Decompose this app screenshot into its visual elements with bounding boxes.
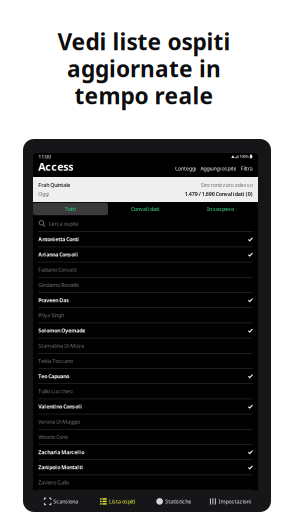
staticText: Tekla Toscano [38, 357, 73, 364]
button[interactable]: Stamatina Di Moze [33, 338, 258, 354]
staticText: Stamatina Di Moze [38, 342, 84, 349]
staticText: Tutti [64, 205, 76, 213]
staticText: Vittorio Conti [38, 433, 68, 440]
staticText: Convalidati [131, 205, 160, 213]
staticText: Aggiungi ospite [200, 165, 236, 172]
button[interactable]: Vittorio Conti [33, 430, 258, 445]
button[interactable]: Zacharia Marcello [33, 445, 258, 460]
staticText: Vedi liste ospiti [57, 26, 230, 56]
staticText: Teo Capuano [38, 373, 69, 380]
staticText: Oggi [38, 190, 49, 198]
staticText: Sincronizzato adesso [201, 181, 253, 188]
button[interactable]: Conteggi [175, 161, 196, 176]
button[interactable]: Zaviero Gallo [33, 475, 258, 490]
staticText: 11:00 [38, 153, 51, 160]
button[interactable]: Girolamo Rosiello [33, 278, 258, 293]
staticText: Scansiona [53, 498, 78, 505]
button[interactable]: Tutti [33, 203, 108, 215]
staticText: Cerca ospite [48, 220, 78, 227]
staticText: Tullio Lucchesi [38, 388, 73, 395]
button[interactable]: Teo Capuano [33, 369, 258, 384]
staticText: aggiornate in [67, 53, 221, 83]
staticText: Zanipolo Montalti [38, 464, 83, 471]
button[interactable]: Verona Di Maggio [33, 414, 258, 430]
button[interactable]: Zanipolo Montalti [33, 460, 258, 475]
staticText: In sospeso [207, 205, 234, 213]
button[interactable]: Praveen Das [33, 293, 258, 308]
button[interactable]: Solomon Oyemade [33, 323, 258, 338]
staticText: Statistiche [165, 498, 191, 505]
staticText: 100% [240, 154, 249, 159]
staticText: Impostazioni [218, 498, 250, 505]
staticText: Girolamo Rosiello [38, 281, 79, 288]
button[interactable]: Tullio Lucchesi [33, 384, 258, 399]
staticText: tempo reale [74, 80, 213, 110]
staticText: Praveen Das [38, 297, 69, 304]
staticText: Priya Singh [38, 312, 64, 319]
staticText: Fabiano Corsetti [38, 266, 77, 273]
button[interactable]: Scansiona [33, 490, 89, 512]
staticText: Antonietta Conti [38, 236, 79, 243]
button[interactable]: Arianna Consoli [33, 247, 258, 262]
staticText: Zaviero Gallo [38, 479, 69, 486]
staticText: Arianna Consoli [38, 251, 78, 258]
staticText: Verona Di Maggio [38, 418, 80, 425]
staticText: Solomon Oyemade [38, 327, 85, 334]
button[interactable]: Convalidati [108, 203, 183, 215]
staticText: Frah Quintale [38, 181, 70, 188]
button[interactable]: Priya Singh [33, 308, 258, 323]
button[interactable]: Tekla Toscano [33, 354, 258, 369]
staticText: Zacharia Marcello [38, 449, 84, 456]
staticText: Lista ospiti [109, 498, 135, 505]
staticText: Conteggi [175, 165, 196, 172]
button[interactable]: Statistiche [145, 490, 202, 512]
button[interactable]: Impostazioni [202, 490, 258, 512]
button[interactable]: Lista ospiti [89, 490, 145, 512]
button[interactable]: Filtra [241, 161, 253, 176]
staticText: Filtra [241, 165, 253, 172]
staticText: Valentino Consoli [38, 403, 82, 410]
button[interactable]: In sospeso [183, 203, 258, 215]
button[interactable]: Aggiungi ospite [200, 161, 236, 176]
button[interactable]: Fabiano Corsetti [33, 262, 258, 278]
staticText: Access [38, 159, 73, 174]
button[interactable]: Valentino Consoli [33, 399, 258, 414]
button[interactable]: Antonietta Conti [33, 232, 258, 247]
staticText: 1.479 / 1.690 Convalidati (0) [185, 190, 253, 198]
